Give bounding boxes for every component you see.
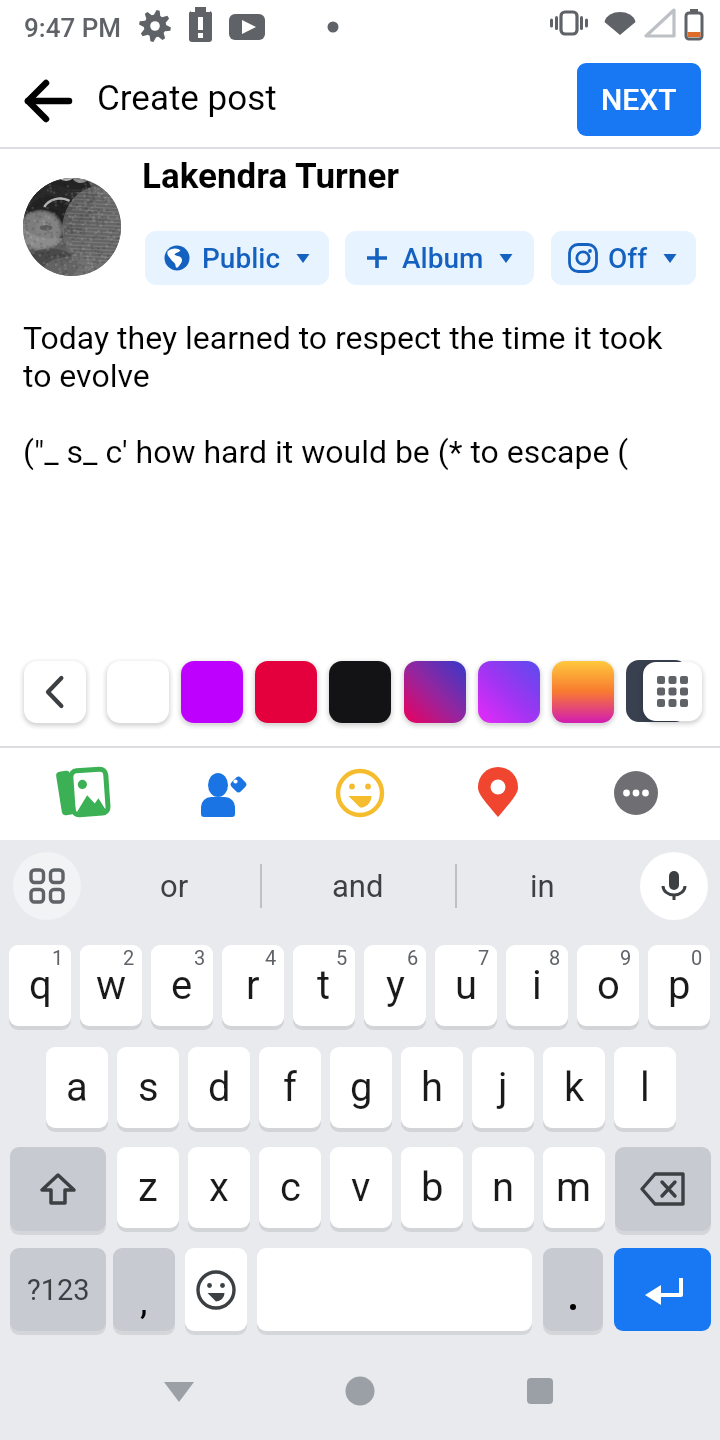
staticText: NEXT — [601, 82, 677, 117]
staticText: l — [640, 1064, 650, 1111]
staticText: Off — [608, 242, 648, 275]
button[interactable]: Previous backgrounds — [24, 661, 86, 723]
staticText: 1 — [52, 946, 64, 969]
button[interactable]: Background style 5 — [404, 661, 466, 723]
button[interactable]: u — [435, 945, 497, 1026]
button[interactable]: Background style 7 — [552, 661, 614, 723]
button[interactable]: NEXT — [577, 63, 701, 136]
staticText: v — [351, 1164, 371, 1211]
staticText: u — [455, 962, 478, 1009]
staticText: 9:47 PM — [24, 13, 121, 43]
button[interactable]: x — [188, 1147, 250, 1228]
staticText: 6 — [407, 946, 419, 969]
button[interactable]: and — [273, 846, 443, 926]
button[interactable]: Back — [139, 1351, 219, 1431]
button[interactable]: l — [614, 1047, 676, 1128]
button[interactable]: a — [46, 1047, 108, 1128]
button[interactable]: n — [472, 1147, 534, 1228]
staticText: m — [556, 1164, 592, 1211]
button[interactable]: Feeling — [320, 753, 400, 833]
button[interactable]: s — [117, 1047, 179, 1128]
staticText: d — [208, 1064, 231, 1111]
button[interactable]: Shift — [10, 1147, 106, 1231]
button[interactable]: f — [259, 1047, 321, 1128]
button[interactable]: m — [543, 1147, 605, 1228]
staticText: ?123 — [27, 1273, 90, 1307]
button[interactable]: z — [117, 1147, 179, 1228]
staticText: 8 — [549, 946, 561, 969]
button[interactable]: Emoji — [185, 1248, 247, 1331]
button[interactable]: y — [364, 945, 426, 1026]
staticText: b — [421, 1164, 444, 1211]
button[interactable]: Symbols — [10, 1248, 106, 1331]
button[interactable]: d — [188, 1047, 250, 1128]
button[interactable]: w — [80, 945, 142, 1026]
button[interactable]: Voice input — [640, 852, 708, 920]
staticText: and — [332, 868, 384, 904]
staticText: 4 — [265, 946, 277, 969]
staticText: , — [140, 1282, 148, 1322]
button[interactable]: Recent apps — [500, 1351, 580, 1431]
button[interactable]: More backgrounds — [618, 650, 720, 736]
button[interactable]: Background style 3 — [255, 661, 317, 723]
staticText: a — [66, 1064, 88, 1111]
button[interactable]: Enter — [614, 1248, 711, 1331]
button[interactable]: e — [151, 945, 213, 1026]
button[interactable]: Period — [543, 1248, 603, 1331]
staticText: Lakendra Turner — [142, 156, 400, 197]
button[interactable]: Backspace — [615, 1147, 711, 1231]
button[interactable]: Background style 1 — [107, 661, 169, 723]
button[interactable]: t — [293, 945, 355, 1026]
button[interactable]: Home — [320, 1351, 400, 1431]
staticText: 7 — [478, 946, 490, 969]
button[interactable]: r — [222, 945, 284, 1026]
staticText: y — [386, 962, 405, 1009]
button[interactable]: Background style 4 — [329, 661, 391, 723]
staticText: 2 — [123, 946, 135, 969]
button[interactable]: o — [577, 945, 639, 1026]
button[interactable]: g — [330, 1047, 392, 1128]
button[interactable]: v — [330, 1147, 392, 1228]
staticText: 0 — [691, 946, 703, 969]
staticText: o — [597, 962, 620, 1009]
button[interactable]: Background style 6 — [478, 661, 540, 723]
button[interactable]: Keyboard toolbar — [13, 852, 81, 920]
button[interactable]: Photo — [44, 753, 124, 833]
button[interactable]: or — [89, 846, 259, 926]
button[interactable]: Comma — [113, 1248, 175, 1331]
button[interactable]: b — [401, 1147, 463, 1228]
staticText: Create post — [97, 78, 277, 119]
button[interactable]: Check in — [458, 753, 538, 833]
staticText: ("_ s_ c' how hard it would be (* to esc… — [23, 433, 713, 471]
button[interactable]: Tag people — [182, 753, 262, 833]
button[interactable]: Background style 2 — [181, 661, 243, 723]
button[interactable]: h — [401, 1047, 463, 1128]
staticText: 5 — [336, 946, 348, 969]
button[interactable]: i — [506, 945, 568, 1026]
button[interactable]: Back — [14, 67, 82, 135]
staticText: r — [246, 962, 260, 1009]
button[interactable]: More options — [596, 753, 676, 833]
button[interactable]: c — [259, 1147, 321, 1228]
staticText: j — [498, 1064, 508, 1111]
button[interactable]: p — [648, 945, 710, 1026]
staticText: n — [492, 1164, 515, 1211]
button[interactable]: Album — [345, 231, 534, 285]
staticText: w — [96, 962, 127, 1009]
staticText: s — [138, 1064, 159, 1111]
button[interactable]: k — [543, 1047, 605, 1128]
staticText: g — [350, 1064, 373, 1111]
staticText: f — [283, 1064, 297, 1111]
button[interactable]: Public — [145, 231, 329, 285]
button[interactable]: Off — [551, 231, 696, 285]
staticText: x — [209, 1164, 229, 1211]
staticText: q — [29, 962, 52, 1009]
button[interactable]: q — [9, 945, 71, 1026]
staticText: h — [421, 1064, 444, 1111]
staticText: e — [171, 962, 193, 1009]
staticText: i — [532, 962, 542, 1009]
staticText: z — [138, 1164, 158, 1211]
button[interactable]: in — [457, 846, 627, 926]
button[interactable]: j — [472, 1047, 534, 1128]
